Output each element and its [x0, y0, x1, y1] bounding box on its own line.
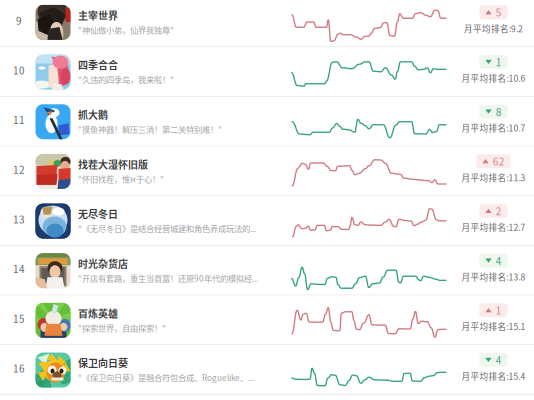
- staticText: 月平均排名:15.4: [461, 370, 525, 382]
- staticText: 15: [13, 311, 25, 326]
- button[interactable]: 11: [0, 97, 534, 147]
- staticText: 9: [16, 13, 22, 28]
- staticText: 1: [496, 55, 502, 69]
- staticText: "探索世界，自由探索！": [78, 322, 166, 334]
- staticText: 5: [496, 5, 502, 19]
- staticText: 12: [13, 162, 25, 177]
- staticText: "摸鱼神器！解压三消！第二关特别难！": [78, 123, 222, 135]
- button[interactable]: 8: [479, 105, 508, 119]
- staticText: "怀旧找茬，惟м于心！": [78, 173, 164, 185]
- button[interactable]: 1: [479, 55, 508, 69]
- button[interactable]: 4: [479, 353, 508, 367]
- button[interactable]: 4: [479, 254, 508, 268]
- staticText: 月平均排名:15.1: [461, 320, 525, 333]
- staticText: 找茬大湿怀旧版: [78, 157, 148, 171]
- staticText: "《保卫向日葵》是融合符包合成、Roguelike、...: [78, 371, 254, 383]
- staticText: 月平均排名:11.3: [461, 171, 525, 184]
- staticText: 62: [493, 154, 505, 168]
- button[interactable]: 12: [0, 147, 534, 196]
- button[interactable]: 14: [0, 246, 534, 296]
- staticText: 16: [13, 361, 25, 375]
- staticText: 11: [13, 112, 25, 127]
- button[interactable]: 62: [476, 154, 511, 168]
- staticText: 13: [13, 212, 25, 226]
- staticText: 月平均排名:13.8: [461, 271, 525, 283]
- staticText: 无尽冬日: [78, 206, 118, 221]
- staticText: 月平均排名:10.6: [461, 72, 525, 84]
- button[interactable]: 13: [0, 196, 534, 246]
- staticText: 14: [13, 261, 25, 276]
- button[interactable]: 9: [0, 0, 534, 47]
- button[interactable]: 1: [479, 303, 508, 317]
- staticText: 4: [496, 253, 502, 268]
- button[interactable]: 2: [479, 204, 508, 218]
- staticText: 2: [496, 204, 502, 218]
- staticText: 8: [496, 104, 502, 119]
- staticText: 月平均排名:10.7: [461, 122, 525, 134]
- staticText: 百炼英雄: [78, 306, 118, 320]
- button[interactable]: 5: [479, 5, 508, 19]
- staticText: 月平均排名:12.7: [461, 221, 525, 233]
- staticText: 主宰世界: [78, 8, 118, 22]
- button[interactable]: 10: [0, 47, 534, 97]
- staticText: 10: [13, 63, 25, 77]
- staticText: 月平均排名:9.2: [464, 22, 523, 35]
- button[interactable]: 15: [0, 296, 534, 345]
- staticText: 四季合合: [78, 57, 118, 72]
- staticText: "开店有套路，重生当首富！还原90年代的模拟经...: [78, 272, 258, 284]
- staticText: "《无尽冬日》是结合经营城建和角色养成玩法的...: [78, 222, 256, 234]
- staticText: 1: [496, 303, 502, 317]
- staticText: "久违的四季岛，我来啦！": [78, 73, 174, 85]
- button[interactable]: 16: [0, 345, 534, 395]
- staticText: 保卫向日葵: [78, 355, 128, 370]
- staticText: 抓大鹅: [78, 107, 108, 122]
- staticText: 4: [496, 353, 502, 367]
- staticText: "神仙做小弟，仙界我独尊": [78, 24, 174, 36]
- staticText: 时光杂货店: [78, 256, 128, 271]
